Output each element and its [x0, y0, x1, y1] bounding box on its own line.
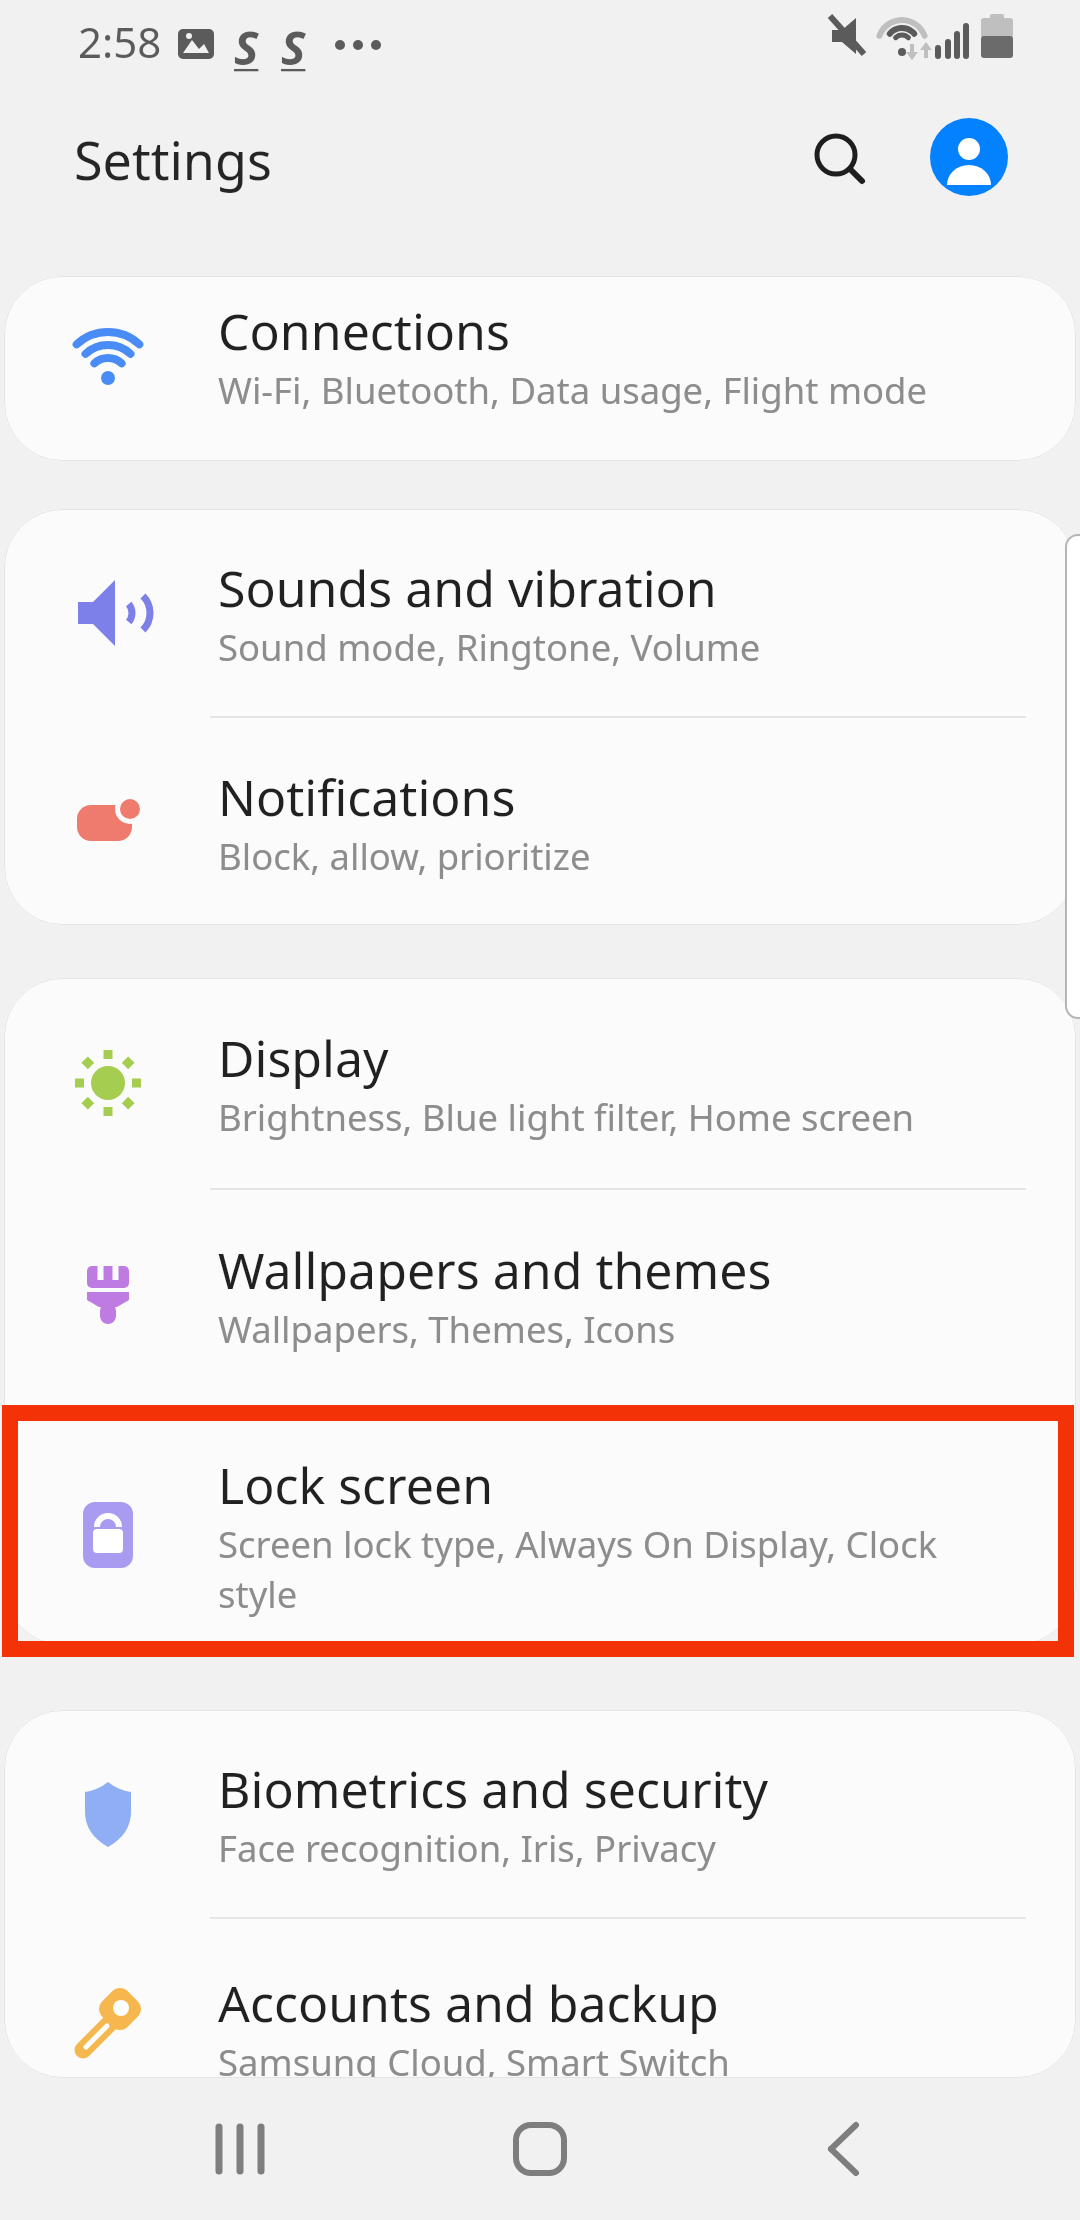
staticText: Sound mode, Ringtone, Volume [218, 622, 761, 672]
button[interactable]: Display [4, 978, 1076, 1188]
button[interactable]: Sounds and vibration [4, 509, 1076, 716]
staticText: Sounds and vibration [218, 554, 717, 622]
staticText: Brightness, Blue light filter, Home scre… [218, 1092, 915, 1142]
staticText: style [218, 1569, 298, 1619]
staticText: Screen lock type, Always On Display, Clo… [218, 1519, 938, 1569]
button[interactable] [450, 2078, 630, 2220]
button[interactable]: Lock screen [4, 1408, 1076, 1645]
staticText: Samsung Cloud, Smart Switch [218, 2037, 730, 2078]
staticText: Biometrics and security [218, 1755, 768, 1823]
button[interactable] [753, 2078, 933, 2220]
staticText: S [281, 16, 306, 72]
button[interactable] [150, 2078, 330, 2220]
staticText: Wi-Fi, Bluetooth, Data usage, Flight mod… [218, 365, 928, 415]
staticText: Connections [218, 297, 510, 365]
button[interactable]: Accounts and backup [4, 1919, 1076, 2078]
staticText: Wallpapers, Themes, Icons [218, 1304, 676, 1354]
button[interactable]: Biometrics and security [4, 1710, 1076, 1917]
staticText: 2:58 [78, 13, 162, 70]
button[interactable]: Notifications [4, 718, 1076, 925]
staticText: Settings [74, 124, 272, 195]
staticText: S [234, 16, 259, 72]
button[interactable]: Wallpapers and themes [4, 1190, 1076, 1406]
staticText: Face recognition, Iris, Privacy [218, 1823, 716, 1873]
staticText: Accounts and backup [218, 1969, 719, 2037]
staticText: Display [218, 1024, 389, 1092]
button[interactable]: Connections [4, 276, 1076, 461]
button[interactable] [812, 131, 868, 187]
button[interactable] [930, 118, 1008, 196]
staticText: Block, allow, prioritize [218, 831, 591, 881]
staticText: Lock screen [218, 1451, 494, 1519]
staticText: Wallpapers and themes [218, 1236, 772, 1304]
staticText: Notifications [218, 763, 516, 831]
